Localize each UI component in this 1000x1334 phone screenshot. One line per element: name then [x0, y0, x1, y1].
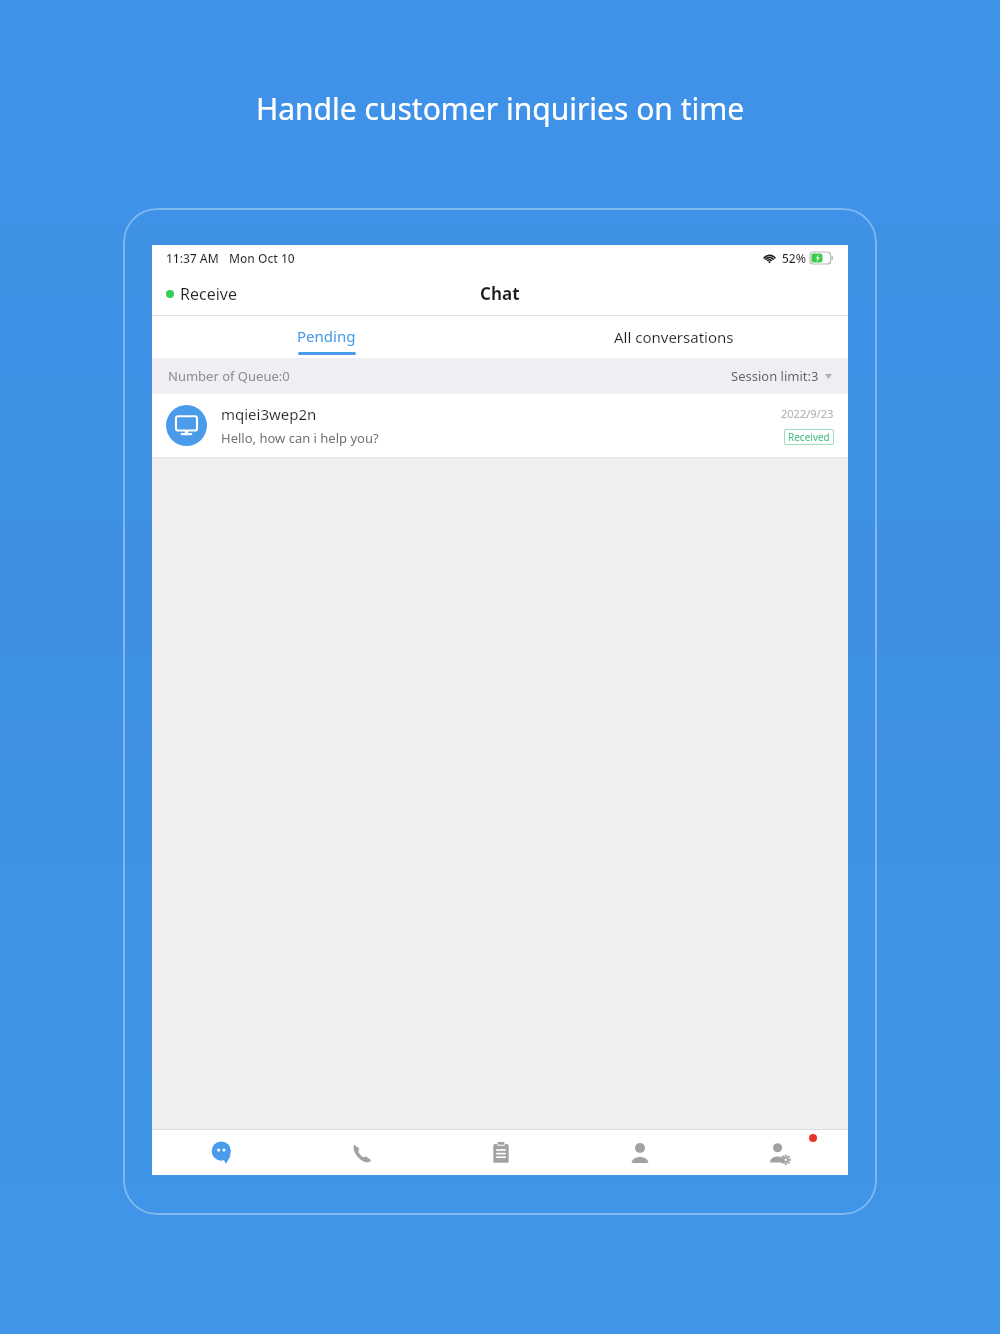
staticText: mqiei3wep2n [221, 404, 317, 424]
button[interactable]: All conversations [500, 316, 848, 358]
button[interactable]: Chat [152, 1130, 292, 1175]
button[interactable]: Pending [152, 316, 500, 358]
staticText: Receive [180, 283, 237, 305]
staticText: 2022/9/23 [781, 406, 834, 421]
staticText: Pending [297, 326, 356, 346]
staticText: Chat [480, 282, 520, 305]
button[interactable]: Account settings [709, 1130, 848, 1175]
staticText: All conversations [614, 327, 734, 347]
staticText: 11:37 AM [166, 250, 219, 266]
staticText: 52% [782, 250, 806, 266]
staticText: Session limit:3 [731, 367, 819, 385]
staticText: Number of Queue:0 [168, 367, 290, 385]
button[interactable]: Tickets [431, 1130, 570, 1175]
staticText: Received [788, 430, 830, 444]
staticText: Mon Oct 10 [229, 250, 295, 266]
button[interactable]: Calls [292, 1130, 431, 1175]
button[interactable]: Receive [166, 283, 237, 305]
button[interactable]: mqiei3wep2n [152, 394, 848, 458]
button[interactable]: Session limit:3 [731, 367, 832, 385]
button[interactable]: Contacts [570, 1130, 709, 1175]
staticText: Handle customer inquiries on time [256, 88, 745, 129]
staticText: Hello, how can i help you? [221, 429, 379, 447]
